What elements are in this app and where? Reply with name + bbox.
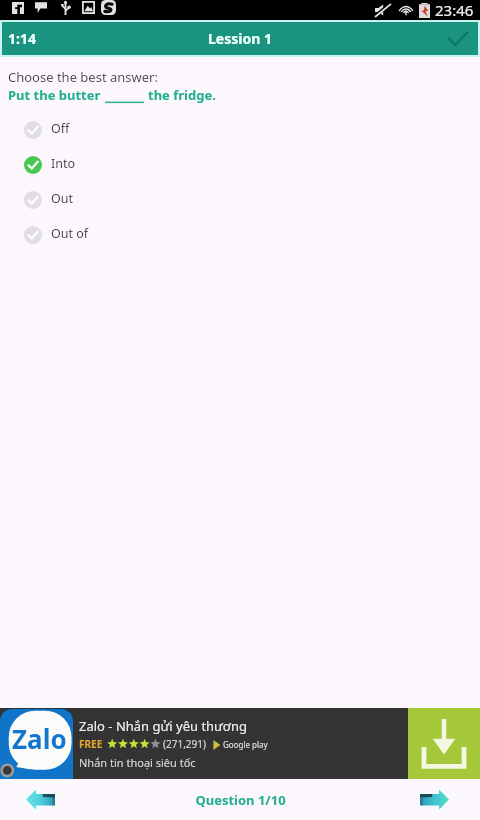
staticText: Into	[51, 155, 76, 172]
button[interactable]: Into	[0, 147, 480, 182]
staticText: (271,291)	[163, 737, 206, 751]
staticText: Google play	[223, 739, 268, 750]
button[interactable]: Off	[0, 112, 480, 147]
staticText: Zalo - Nhắn gửi yêu thương	[79, 717, 247, 735]
staticText: Off	[51, 120, 70, 137]
staticText: Out	[51, 190, 74, 207]
button[interactable]: Out of	[0, 217, 480, 252]
staticText: 23:46	[435, 0, 474, 20]
staticText: Zalo	[12, 721, 67, 756]
button[interactable]: Previous question	[0, 779, 80, 820]
button[interactable]: Submit answer	[438, 22, 478, 55]
button[interactable]: Next question	[388, 779, 480, 820]
staticText: Put the butter	[8, 86, 101, 104]
staticText: the fridge.	[148, 86, 216, 104]
button[interactable]: Install app	[408, 708, 480, 779]
staticText: Out of	[51, 225, 89, 242]
staticText: Lession 1	[208, 29, 272, 48]
button[interactable]: Zalo	[0, 708, 480, 779]
staticText: Choose the best answer:	[8, 68, 158, 86]
button[interactable]: Out	[0, 182, 480, 217]
staticText: 1:14	[8, 29, 36, 48]
staticText: Nhắn tin thoại siêu tốc	[79, 755, 196, 770]
staticText: FREE	[79, 737, 103, 751]
staticText: Question 1/10	[195, 791, 286, 809]
